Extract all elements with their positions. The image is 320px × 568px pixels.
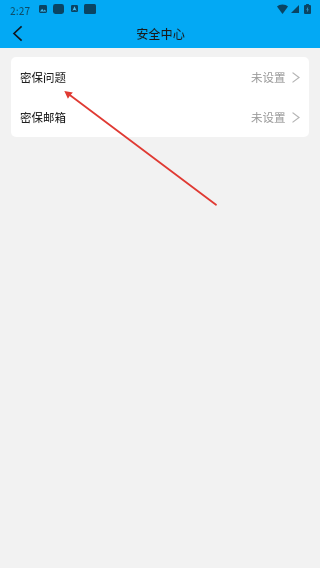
button[interactable]: Back [0,19,36,48]
staticText: 安全中心 [136,25,185,43]
staticText: 未设置 [251,69,286,86]
staticText: 未设置 [251,109,286,126]
button[interactable]: 密保邮箱 [11,97,309,137]
button[interactable]: 密保问题 [11,57,309,97]
staticText: 2:27 [10,3,31,17]
staticText: 密保邮箱 [20,109,66,126]
staticText: 密保问题 [20,69,66,86]
